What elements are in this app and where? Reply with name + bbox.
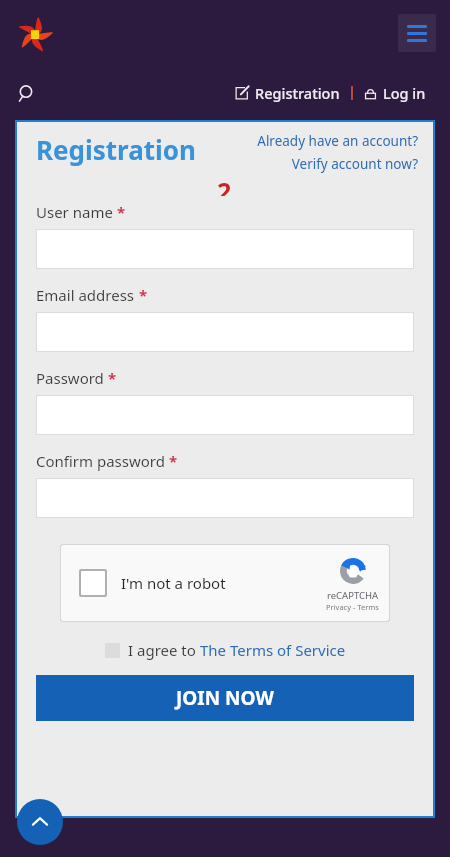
button[interactable]: Search [10, 76, 44, 110]
button[interactable]: Menu [398, 14, 436, 52]
staticText: * [135, 285, 148, 305]
staticText: Registration [255, 83, 340, 103]
button[interactable]: JOIN NOW [36, 675, 414, 721]
staticText: I agree to [128, 640, 200, 660]
staticText: 2 [217, 174, 232, 196]
staticText: * [104, 368, 117, 388]
staticText: * [165, 451, 178, 471]
staticText: Password [36, 368, 104, 388]
staticText: Log in [383, 83, 426, 103]
staticText: * [113, 202, 126, 222]
staticText: I'm not a robot [121, 573, 226, 593]
button[interactable]: Log in [362, 79, 428, 107]
button[interactable]: Verify account now? [291, 154, 418, 174]
button[interactable]: Registration [233, 79, 342, 107]
button[interactable]: The Terms of Service [200, 640, 346, 660]
staticText: Privacy - Terms [326, 602, 379, 612]
button[interactable]: Already have an account? [257, 131, 418, 151]
staticText: Registration [36, 132, 197, 167]
button[interactable]: Scroll to top [17, 799, 63, 845]
staticText: User name [36, 202, 113, 222]
staticText: reCAPTCHA [327, 589, 379, 602]
button[interactable]: Home logo [12, 12, 58, 58]
staticText: Email address [36, 285, 135, 305]
staticText: JOIN NOW [176, 685, 274, 711]
staticText: Confirm password [36, 451, 165, 471]
